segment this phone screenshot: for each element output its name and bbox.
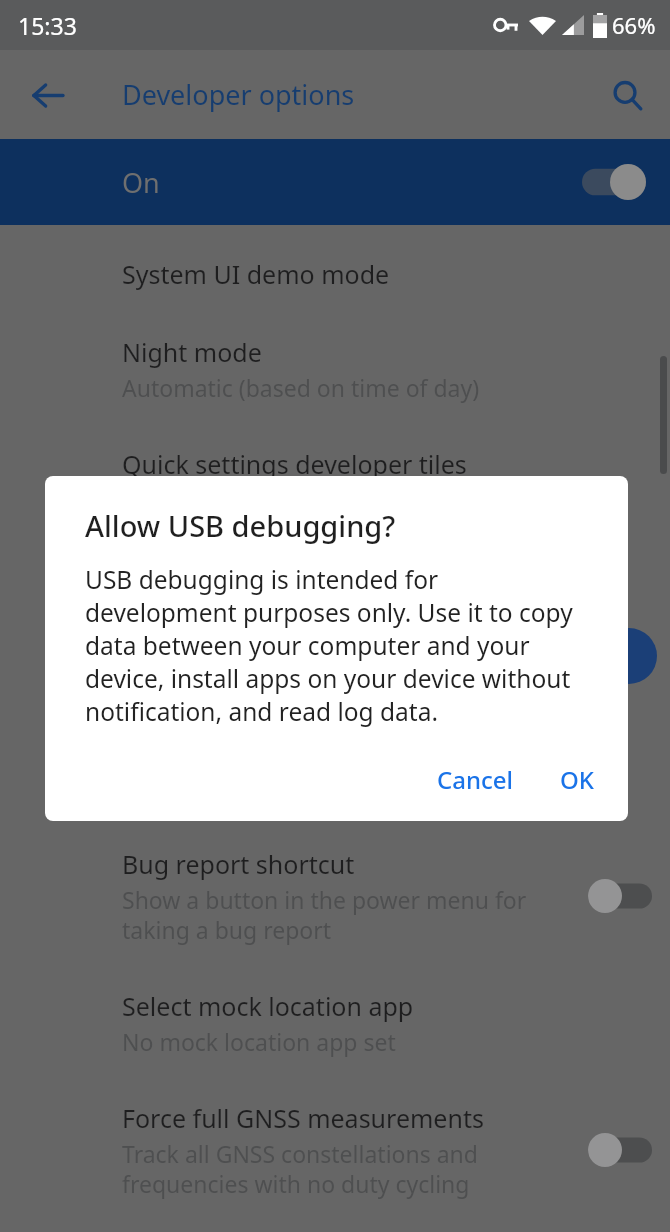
staticText: Bug report shortcut bbox=[122, 847, 355, 881]
staticText: Track all GNSS constellations and freque… bbox=[122, 1138, 478, 1199]
button[interactable]: System UI demo mode bbox=[0, 235, 670, 313]
staticText: Force full GNSS measurements bbox=[122, 1101, 484, 1135]
staticText: Allow USB debugging? bbox=[85, 506, 396, 545]
button[interactable]: Cancel bbox=[421, 751, 530, 808]
staticText: System UI demo mode bbox=[122, 257, 390, 291]
staticText: Quick settings developer tiles bbox=[122, 447, 467, 481]
button[interactable]: Select mock location app bbox=[0, 967, 670, 1079]
staticText: USB debugging is intended for developmen… bbox=[85, 563, 594, 728]
button[interactable]: Add bbox=[601, 628, 657, 684]
button[interactable]: Force full GNSS measurements bbox=[0, 1079, 670, 1221]
button[interactable]: On bbox=[0, 139, 670, 225]
staticText: OK bbox=[560, 763, 594, 796]
button[interactable]: Back bbox=[18, 66, 76, 124]
staticText: Select mock location app bbox=[122, 989, 414, 1023]
button[interactable]: Quick settings developer tiles bbox=[0, 425, 670, 503]
button[interactable]: Night mode bbox=[0, 313, 670, 425]
staticText: Automatic (based on time of day) bbox=[122, 372, 480, 403]
staticText: Cancel bbox=[437, 763, 514, 796]
staticText: 66% bbox=[612, 10, 656, 40]
staticText: 15:33 bbox=[18, 10, 77, 41]
staticText: Developer options bbox=[122, 76, 355, 113]
button[interactable]: OK bbox=[544, 751, 610, 808]
button[interactable]: Bug report shortcut bbox=[0, 825, 670, 967]
staticText: On bbox=[122, 164, 160, 201]
staticText: No mock location app set bbox=[122, 1026, 396, 1057]
staticText: Show a button in the power menu for taki… bbox=[122, 884, 527, 945]
staticText: Night mode bbox=[122, 335, 262, 369]
button[interactable]: Search bbox=[598, 66, 656, 124]
